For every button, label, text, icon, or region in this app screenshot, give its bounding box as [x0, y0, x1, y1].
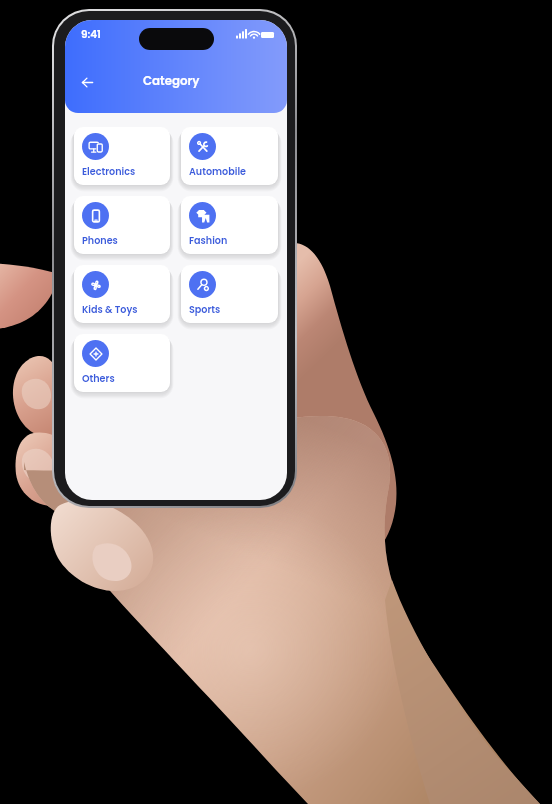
staticText: Electronics: [82, 165, 136, 178]
button[interactable]: Fashion: [181, 196, 278, 254]
button[interactable]: Kids & Toys: [74, 265, 170, 323]
staticText: Category: [143, 73, 200, 90]
staticText: Phones: [82, 234, 118, 247]
button[interactable]: Sports: [181, 265, 278, 323]
button[interactable]: Phones: [74, 196, 170, 254]
button[interactable]: Automobile: [181, 127, 278, 185]
staticText: Fashion: [189, 234, 228, 247]
staticText: Others: [82, 372, 115, 385]
button[interactable]: Others: [74, 334, 170, 392]
staticText: 9:41: [81, 27, 101, 42]
staticText: Automobile: [189, 165, 246, 178]
button[interactable]: Electronics: [74, 127, 170, 185]
staticText: Sports: [189, 303, 221, 316]
button[interactable]: Back: [73, 68, 101, 96]
staticText: Kids & Toys: [82, 303, 138, 316]
